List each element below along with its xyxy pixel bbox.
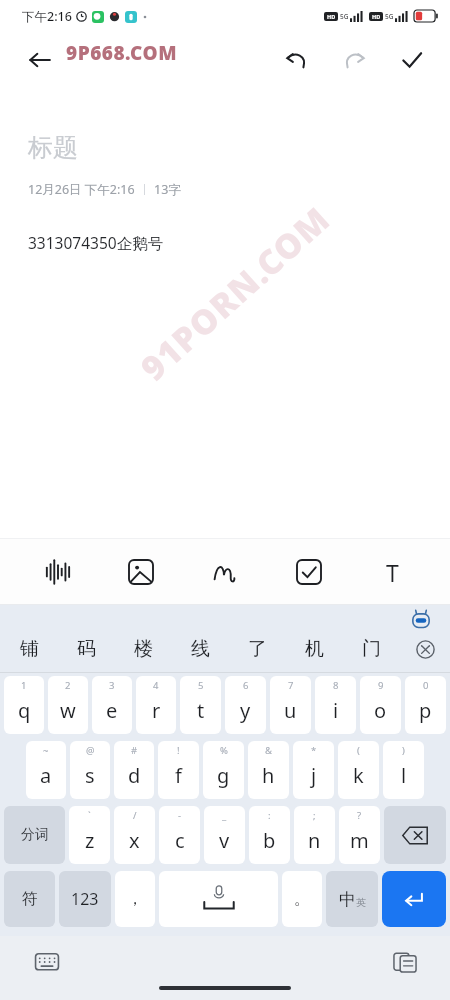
staticText: 标题	[28, 132, 78, 163]
staticText: *	[311, 744, 317, 757]
button[interactable]: 机	[286, 629, 343, 669]
staticText: #	[131, 744, 138, 757]
staticText: 13字	[154, 181, 181, 198]
button[interactable]: /	[114, 806, 155, 864]
staticText: &	[265, 744, 272, 757]
staticText: )	[402, 744, 405, 757]
button[interactable]: Image	[115, 546, 167, 598]
button[interactable]: Checklist	[283, 546, 335, 598]
button[interactable]: %	[203, 741, 244, 799]
button[interactable]: 6	[225, 676, 266, 734]
button[interactable]: 楼	[115, 629, 172, 669]
staticText: 中	[339, 889, 356, 910]
button[interactable]: 符	[4, 871, 55, 927]
staticText: s	[85, 762, 95, 789]
button[interactable]: Undo	[274, 38, 318, 82]
button[interactable]: 。	[282, 871, 322, 927]
staticText: g	[217, 762, 230, 789]
button[interactable]: Clear	[400, 629, 450, 669]
staticText: 下午2:16	[22, 8, 72, 25]
button[interactable]: 7	[270, 676, 311, 734]
button[interactable]: Clipboard	[388, 945, 422, 979]
staticText: 楼	[134, 637, 153, 661]
staticText: %	[220, 744, 228, 757]
button[interactable]: @	[70, 741, 110, 799]
button[interactable]: 码	[58, 629, 115, 669]
button[interactable]: 3	[92, 676, 132, 734]
button[interactable]: `	[69, 806, 110, 864]
staticText: 12月26日 下午2:16	[28, 181, 135, 198]
button[interactable]: *	[293, 741, 334, 799]
staticText: k	[353, 762, 364, 789]
staticText: (	[357, 744, 360, 757]
staticText: j	[311, 762, 317, 789]
button[interactable]: (	[338, 741, 379, 799]
staticText: 符	[22, 889, 38, 909]
button[interactable]: Assistant	[408, 607, 434, 633]
button[interactable]: ~	[26, 741, 66, 799]
staticText: ，	[127, 889, 143, 909]
button[interactable]: _	[204, 806, 245, 864]
staticText: 0	[423, 679, 429, 692]
button[interactable]: 中	[326, 871, 378, 927]
button[interactable]: Text format	[366, 546, 418, 598]
button[interactable]: :	[249, 806, 290, 864]
staticText: 91PORN.COM	[130, 196, 339, 390]
button[interactable]: Enter	[382, 871, 446, 927]
staticText: /	[133, 809, 137, 822]
button[interactable]: ;	[294, 806, 335, 864]
staticText: u	[284, 697, 297, 724]
button[interactable]: 123	[59, 871, 111, 927]
button[interactable]: Done	[390, 38, 434, 82]
staticText: b	[263, 827, 276, 854]
staticText: t	[197, 697, 205, 724]
staticText: -	[178, 809, 182, 822]
button[interactable]: 9	[360, 676, 401, 734]
staticText: 英	[356, 896, 366, 909]
button[interactable]: -	[159, 806, 200, 864]
button[interactable]: Backspace	[384, 806, 446, 864]
button[interactable]: Back	[18, 38, 62, 82]
button[interactable]: 1	[4, 676, 44, 734]
button[interactable]: Space	[159, 871, 278, 927]
staticText: 6	[243, 679, 249, 692]
staticText: l	[401, 762, 407, 789]
staticText: 8	[333, 679, 339, 692]
button[interactable]: &	[248, 741, 289, 799]
button[interactable]: 0	[405, 676, 446, 734]
button[interactable]: 5	[180, 676, 221, 734]
button[interactable]: Handwriting	[199, 546, 251, 598]
button[interactable]: 线	[172, 629, 229, 669]
staticText: @	[86, 744, 95, 757]
button[interactable]: 铺	[0, 629, 58, 669]
staticText: 5G	[385, 12, 394, 21]
staticText: 9P668.COM	[66, 40, 178, 66]
staticText: z	[85, 827, 95, 854]
button[interactable]: #	[114, 741, 154, 799]
button[interactable]: Hide keyboard	[30, 945, 64, 979]
button[interactable]: 4	[136, 676, 176, 734]
button[interactable]: )	[383, 741, 424, 799]
button[interactable]: ?	[339, 806, 380, 864]
staticText: p	[419, 697, 432, 724]
staticText: d	[128, 762, 141, 789]
staticText: a	[40, 762, 52, 789]
staticText: 。	[294, 889, 310, 909]
button[interactable]: 了	[229, 629, 286, 669]
staticText: 机	[305, 637, 324, 661]
button[interactable]: 8	[315, 676, 356, 734]
button[interactable]: !	[158, 741, 199, 799]
staticText: 5G	[340, 12, 349, 21]
button[interactable]: ，	[115, 871, 155, 927]
staticText: 线	[191, 637, 210, 661]
button[interactable]: 2	[48, 676, 88, 734]
staticText: 2	[65, 679, 71, 692]
staticText: `	[88, 809, 91, 822]
button[interactable]: 分词	[4, 806, 65, 864]
staticText: 3	[109, 679, 115, 692]
button[interactable]: Redo	[332, 38, 376, 82]
staticText: r	[152, 697, 161, 724]
staticText: ?	[357, 809, 362, 822]
button[interactable]: Voice	[32, 546, 84, 598]
button[interactable]: 门	[343, 629, 400, 669]
